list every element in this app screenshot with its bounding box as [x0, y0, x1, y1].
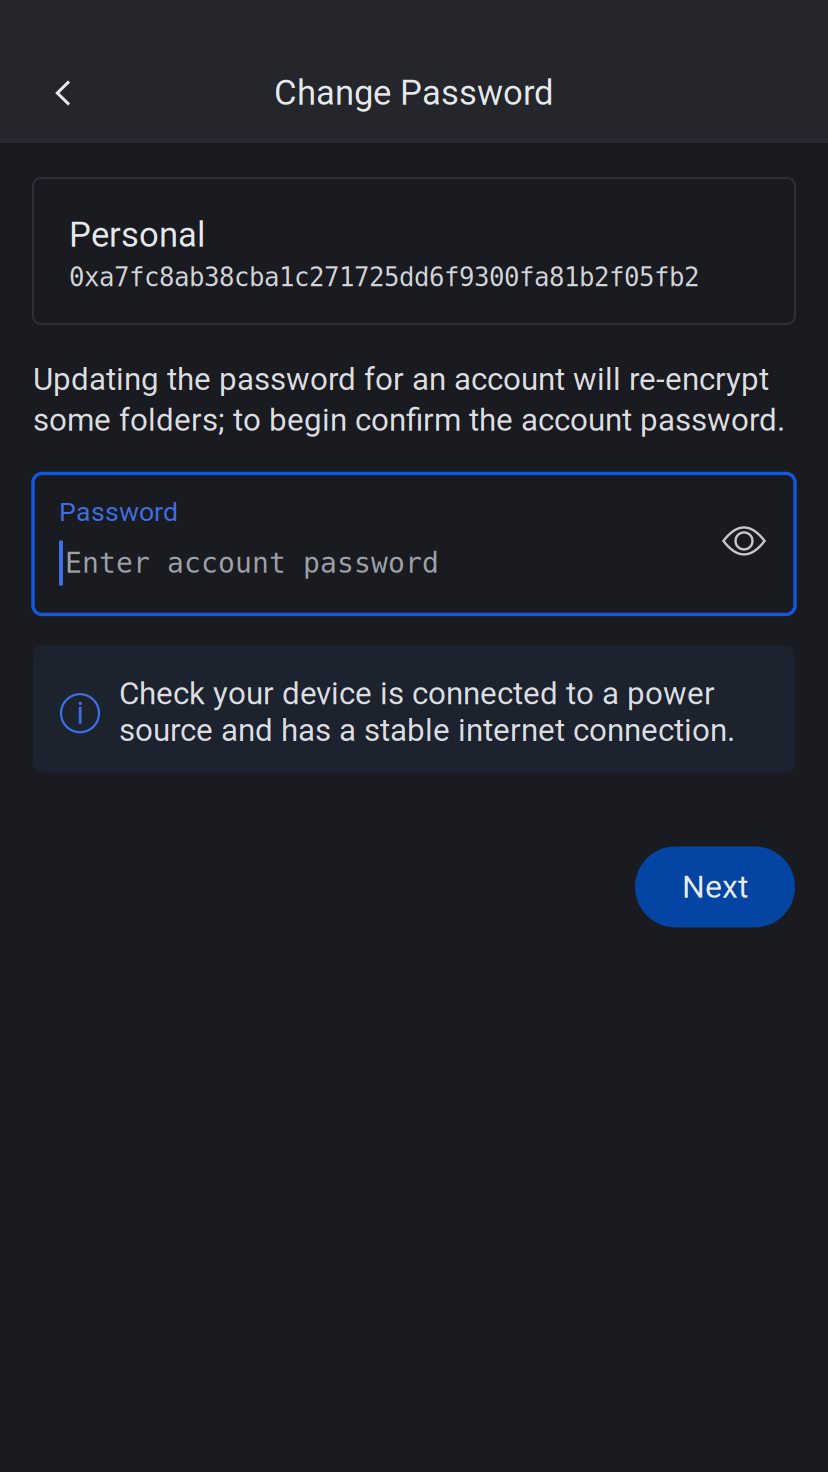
- button[interactable]: Show password: [713, 510, 775, 572]
- staticText: Change Password: [274, 73, 554, 113]
- staticText: Enter account password: [65, 547, 439, 579]
- staticText: Personal: [69, 215, 205, 255]
- staticText: Updating the password for an account wil…: [33, 361, 785, 438]
- staticText: i: [76, 695, 83, 731]
- button[interactable]: Next: [635, 846, 795, 927]
- staticText: Next: [682, 868, 748, 906]
- button[interactable]: Back: [31, 61, 95, 125]
- staticText: Check your device is connected to a powe…: [119, 675, 735, 749]
- staticText: 0xa7fc8ab38cba1c271725dd6f9300fa81b2f05f…: [69, 262, 699, 292]
- staticText: Password: [59, 496, 178, 528]
